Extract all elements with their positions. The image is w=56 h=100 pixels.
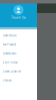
staticText: Dark mode [3,34,16,37]
staticText: Chia se [3,79,11,82]
staticText: Thanh Ou [11,16,26,19]
button[interactable]: Downloads [0,49,37,58]
staticText: Downloads [3,52,16,55]
staticText: Email plan list [3,70,21,73]
button[interactable]: Email plan list [0,67,37,76]
button[interactable]: Dark mode [0,31,37,40]
button[interactable]: My PlayList [0,40,37,49]
button[interactable]: Edit Video [0,58,37,67]
button[interactable]: Chia se [0,76,37,85]
staticText: Edit Video [3,61,18,64]
staticText: My PlayList [3,43,16,46]
